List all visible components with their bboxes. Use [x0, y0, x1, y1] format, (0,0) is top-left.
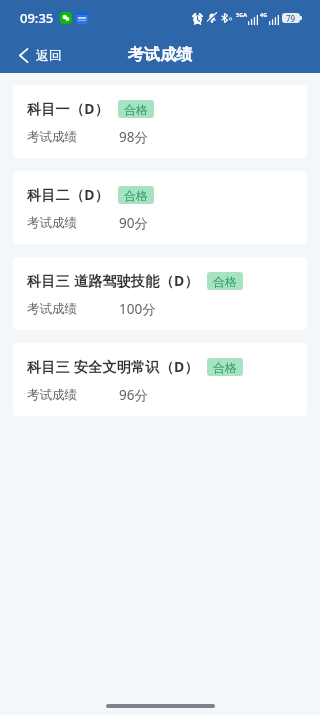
button[interactable]: 科目三 道路驾驶技能（D） — [13, 257, 307, 330]
staticText: 考试成绩 — [27, 387, 77, 403]
other: 返回 — [19, 48, 28, 63]
staticText: 09:35 — [20, 9, 54, 27]
staticText: 科目三 安全文明常识（D） — [27, 357, 199, 376]
staticText: 合格 — [213, 360, 237, 375]
staticText: 100分 — [119, 300, 156, 318]
staticText: 合格 — [124, 188, 148, 203]
button[interactable]: 科目一（D） — [13, 85, 307, 158]
staticText: 79 — [286, 13, 296, 23]
staticText: 科目二（D） — [27, 185, 110, 204]
staticText: 5GA — [236, 11, 247, 18]
staticText: 返回 — [36, 47, 62, 63]
button[interactable]: 科目二（D） — [13, 171, 307, 244]
staticText: 90分 — [119, 214, 148, 232]
staticText: 合格 — [124, 102, 148, 117]
staticText: 科目一（D） — [27, 99, 110, 118]
button[interactable]: 返回 — [0, 39, 76, 71]
staticText: 考试成绩 — [27, 215, 77, 231]
staticText: 96分 — [119, 386, 148, 404]
staticText: 考试成绩 — [128, 45, 192, 65]
staticText: 考试成绩 — [27, 301, 77, 317]
staticText: 98分 — [119, 128, 148, 146]
staticText: 考试成绩 — [27, 129, 77, 145]
staticText: 合格 — [213, 274, 237, 289]
staticText: 4G — [260, 11, 268, 18]
staticText: 科目三 道路驾驶技能（D） — [27, 271, 199, 290]
button[interactable]: 科目三 安全文明常识（D） — [13, 343, 307, 416]
